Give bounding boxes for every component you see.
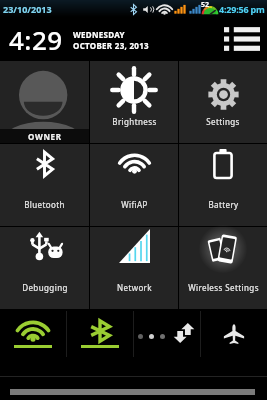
staticText: OCTOBER 23, 2013: [73, 40, 149, 51]
button[interactable]: Wireless Settings: [179, 227, 267, 309]
staticText: Settings: [206, 116, 240, 127]
staticText: Battery: [208, 199, 239, 210]
staticText: WifiAP: [121, 199, 148, 210]
staticText: Wireless Settings: [188, 282, 259, 293]
button[interactable]: Debugging: [0, 227, 89, 309]
button[interactable]: WifiAP: [90, 144, 178, 226]
button[interactable]: Bluetooth: [67, 309, 133, 359]
button[interactable]: Brightness: [90, 61, 178, 143]
button[interactable]: Airplane mode: [201, 309, 267, 359]
staticText: OWNER: [28, 131, 62, 142]
staticText: Brightness: [112, 116, 157, 127]
button[interactable]: Mobile data: [134, 309, 200, 359]
button[interactable]: Menu: [222, 19, 262, 59]
button[interactable]: Battery: [179, 144, 267, 226]
staticText: WEDNESDAY: [73, 29, 125, 40]
staticText: 4:29:56 pm: [219, 3, 265, 15]
button[interactable]: Network: [90, 227, 178, 309]
button[interactable]: Settings: [179, 61, 267, 143]
button[interactable]: Wi-Fi: [0, 309, 66, 359]
staticText: Debugging: [22, 282, 68, 293]
button[interactable]: Bluetooth: [0, 144, 89, 226]
staticText: 4:29: [9, 22, 63, 57]
staticText: Bluetooth: [24, 199, 65, 210]
button[interactable]: OWNER: [0, 61, 89, 143]
staticText: Network: [117, 282, 152, 293]
staticText: 52: [201, 0, 210, 10]
staticText: 23/10/2013: [3, 3, 52, 15]
